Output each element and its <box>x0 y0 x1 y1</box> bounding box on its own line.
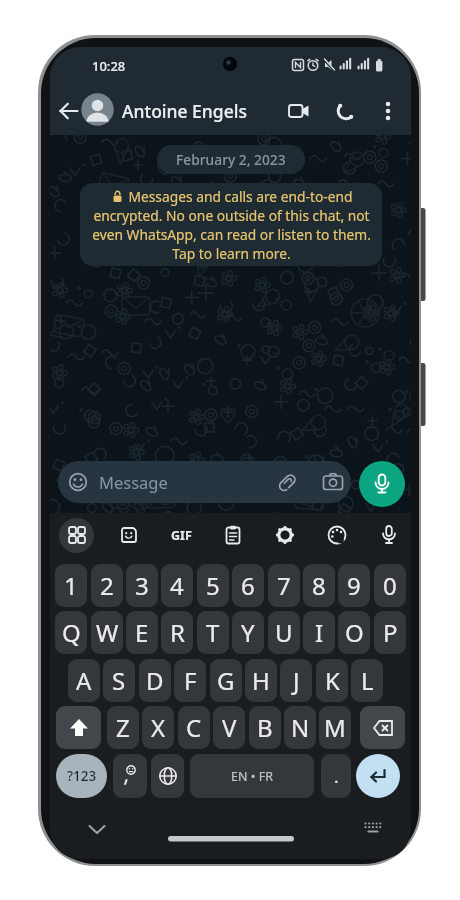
button[interactable] <box>151 754 184 798</box>
button[interactable] <box>81 93 114 126</box>
button[interactable]: 3 <box>126 564 158 607</box>
button[interactable] <box>56 706 101 749</box>
button[interactable]: U <box>268 611 300 654</box>
button[interactable] <box>222 524 244 546</box>
button[interactable] <box>57 99 81 123</box>
button[interactable]: Z <box>107 706 139 749</box>
button[interactable]: K <box>316 659 348 702</box>
button[interactable] <box>356 754 400 798</box>
button[interactable]: GIF <box>166 525 196 545</box>
button[interactable]: R <box>161 611 193 654</box>
button[interactable] <box>286 98 312 124</box>
button[interactable]: February 2, 2023 <box>157 145 305 174</box>
staticText: 3 <box>135 569 149 602</box>
button[interactable]: F <box>174 659 206 702</box>
staticText: . <box>334 765 339 788</box>
button[interactable]: G <box>210 659 242 702</box>
button[interactable]: D <box>139 659 171 702</box>
staticText: 2 <box>100 569 114 602</box>
button[interactable] <box>58 461 351 503</box>
button[interactable]: I <box>303 611 335 654</box>
staticText: 5 <box>206 569 220 602</box>
staticText: J <box>293 664 300 697</box>
staticText: B <box>257 711 273 744</box>
button[interactable] <box>118 524 140 546</box>
button[interactable] <box>326 524 348 546</box>
button[interactable] <box>377 100 399 122</box>
button[interactable]: X <box>142 706 174 749</box>
button[interactable]: E <box>126 611 158 654</box>
button[interactable]: Q <box>55 611 87 654</box>
button[interactable]: H <box>245 659 277 702</box>
staticText: 9 <box>347 569 361 602</box>
button[interactable]: 4 <box>161 564 193 607</box>
button[interactable]: EN • FR <box>190 754 314 798</box>
staticText: P <box>383 616 398 649</box>
button[interactable] <box>276 470 300 494</box>
button[interactable]: 8 <box>303 564 335 607</box>
staticText: Messages and calls are end-to-end <box>128 187 353 206</box>
button[interactable]: B <box>249 706 281 749</box>
button[interactable]: N <box>284 706 316 749</box>
button[interactable] <box>59 518 94 553</box>
button[interactable]: O <box>338 611 370 654</box>
staticText: 10:28 <box>92 57 126 75</box>
staticText: X <box>151 711 166 744</box>
staticText: Q <box>62 616 81 649</box>
staticText: L <box>361 664 374 697</box>
staticText: even WhatsApp, can read or listen to the… <box>92 225 371 244</box>
button[interactable]: C <box>178 706 210 749</box>
staticText: Z <box>116 711 130 744</box>
button[interactable]: V <box>213 706 245 749</box>
staticText: U <box>275 616 293 649</box>
button[interactable]: A <box>68 659 100 702</box>
button[interactable] <box>361 816 385 840</box>
staticText: 8 <box>312 569 326 602</box>
button[interactable]: W <box>91 611 123 654</box>
staticText: W <box>96 616 119 649</box>
button[interactable]: ?123 <box>56 754 107 798</box>
button[interactable] <box>378 524 400 546</box>
button[interactable]: 6 <box>232 564 264 607</box>
button[interactable] <box>113 754 147 798</box>
button[interactable]: 7 <box>268 564 300 607</box>
button[interactable] <box>67 525 87 545</box>
button[interactable]: J <box>280 659 312 702</box>
button[interactable]: 1 <box>55 564 87 607</box>
staticText: February 2, 2023 <box>176 150 286 169</box>
button[interactable] <box>360 706 405 749</box>
staticText: O <box>345 616 364 649</box>
button[interactable]: S <box>103 659 135 702</box>
button[interactable]: Y <box>232 611 264 654</box>
staticText: S <box>112 664 126 697</box>
button[interactable]: M <box>319 706 351 749</box>
button[interactable] <box>359 461 405 507</box>
button[interactable]: 5 <box>197 564 229 607</box>
button[interactable] <box>85 817 109 841</box>
button[interactable]: Messages and calls are end-to-end <box>80 183 382 266</box>
button[interactable]: 2 <box>91 564 123 607</box>
staticText: Antoine Engels <box>122 99 247 123</box>
button[interactable]: L <box>351 659 383 702</box>
staticText: T <box>206 616 220 649</box>
button[interactable] <box>274 524 296 546</box>
staticText: A <box>76 664 92 697</box>
staticText: E <box>135 616 149 649</box>
staticText: D <box>146 664 164 697</box>
button[interactable]: 0 <box>374 564 406 607</box>
button[interactable] <box>333 98 359 124</box>
staticText: K <box>325 664 340 697</box>
staticText: G <box>217 664 235 697</box>
button[interactable]: T <box>197 611 229 654</box>
button[interactable]: . <box>321 754 351 798</box>
staticText: M <box>324 711 346 744</box>
button[interactable] <box>321 470 345 494</box>
staticText: R <box>170 616 185 649</box>
staticText: F <box>184 664 197 697</box>
staticText: 7 <box>277 569 291 602</box>
button[interactable] <box>66 470 90 494</box>
staticText: 6 <box>241 569 255 602</box>
button[interactable]: P <box>374 611 406 654</box>
button[interactable]: 9 <box>338 564 370 607</box>
staticText: Message <box>99 471 168 493</box>
